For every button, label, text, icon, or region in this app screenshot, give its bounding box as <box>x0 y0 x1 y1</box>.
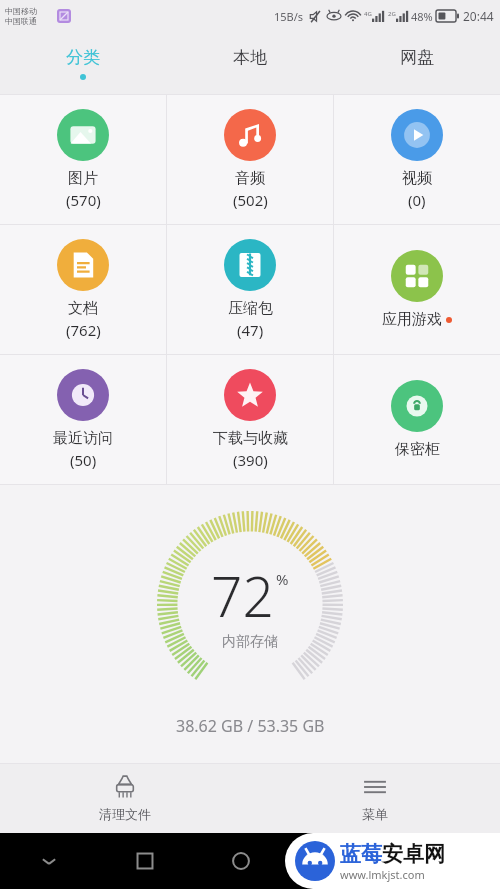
staticText: 压缩包 <box>228 299 273 318</box>
staticText: 72 <box>211 558 274 633</box>
staticText: (0) <box>408 190 426 210</box>
staticText: 应用游戏 <box>382 310 442 329</box>
staticText: (50) <box>70 450 97 470</box>
button[interactable]: 视频 <box>334 95 500 224</box>
button[interactable]: 菜单 <box>250 763 500 833</box>
button[interactable]: Back <box>289 833 385 889</box>
staticText: 20:44 <box>463 8 494 24</box>
staticText: 下载与收藏 <box>213 429 288 448</box>
button[interactable]: 下载与收藏 <box>167 355 333 484</box>
staticText: (390) <box>233 450 268 470</box>
staticText: 4G <box>364 10 372 18</box>
staticText: 蓝莓 <box>340 841 382 867</box>
staticText: 文档 <box>68 299 98 318</box>
staticText: 48% <box>411 9 433 24</box>
button[interactable]: 文档 <box>0 225 166 354</box>
staticText: (762) <box>66 320 101 340</box>
staticText: 清理文件 <box>99 806 151 822</box>
button[interactable]: 分类 <box>0 32 166 95</box>
button[interactable]: 保密柜 <box>334 355 500 484</box>
button[interactable]: 清理文件 <box>0 763 250 833</box>
button[interactable]: Recents <box>97 833 193 889</box>
button[interactable]: 网盘 <box>333 32 500 95</box>
button[interactable]: 音频 <box>167 95 333 224</box>
button[interactable]: 应用游戏 <box>334 225 500 354</box>
staticText: 最近访问 <box>53 429 113 448</box>
staticText: 分类 <box>66 47 100 68</box>
staticText: (47) <box>237 320 264 340</box>
staticText: 菜单 <box>362 806 388 822</box>
staticText: 安卓网 <box>382 841 445 867</box>
staticText: 15B/s <box>274 9 304 24</box>
staticText: % <box>276 569 289 589</box>
button[interactable]: 图片 <box>0 95 166 224</box>
staticText: 中国联通 <box>5 16 37 26</box>
staticText: 网盘 <box>400 47 434 68</box>
staticText: 内部存储 <box>222 633 278 651</box>
staticText: (502) <box>233 190 268 210</box>
button[interactable]: Home <box>193 833 289 889</box>
staticText: 视频 <box>402 169 432 188</box>
staticText: 本地 <box>233 47 267 68</box>
staticText: (570) <box>66 190 101 210</box>
staticText: 2G <box>388 10 396 18</box>
staticText: 音频 <box>235 169 265 188</box>
button[interactable]: 最近访问 <box>0 355 166 484</box>
staticText: 图片 <box>68 169 98 188</box>
staticText: 38.62 GB / 53.35 GB <box>176 715 325 737</box>
staticText: 保密柜 <box>395 440 440 459</box>
button[interactable]: Hide keyboard <box>0 833 97 889</box>
staticText: www.lmkjst.com <box>340 867 425 882</box>
button[interactable]: 压缩包 <box>167 225 333 354</box>
staticText: 中国移动 <box>5 6 37 16</box>
button[interactable]: 本地 <box>166 32 333 95</box>
